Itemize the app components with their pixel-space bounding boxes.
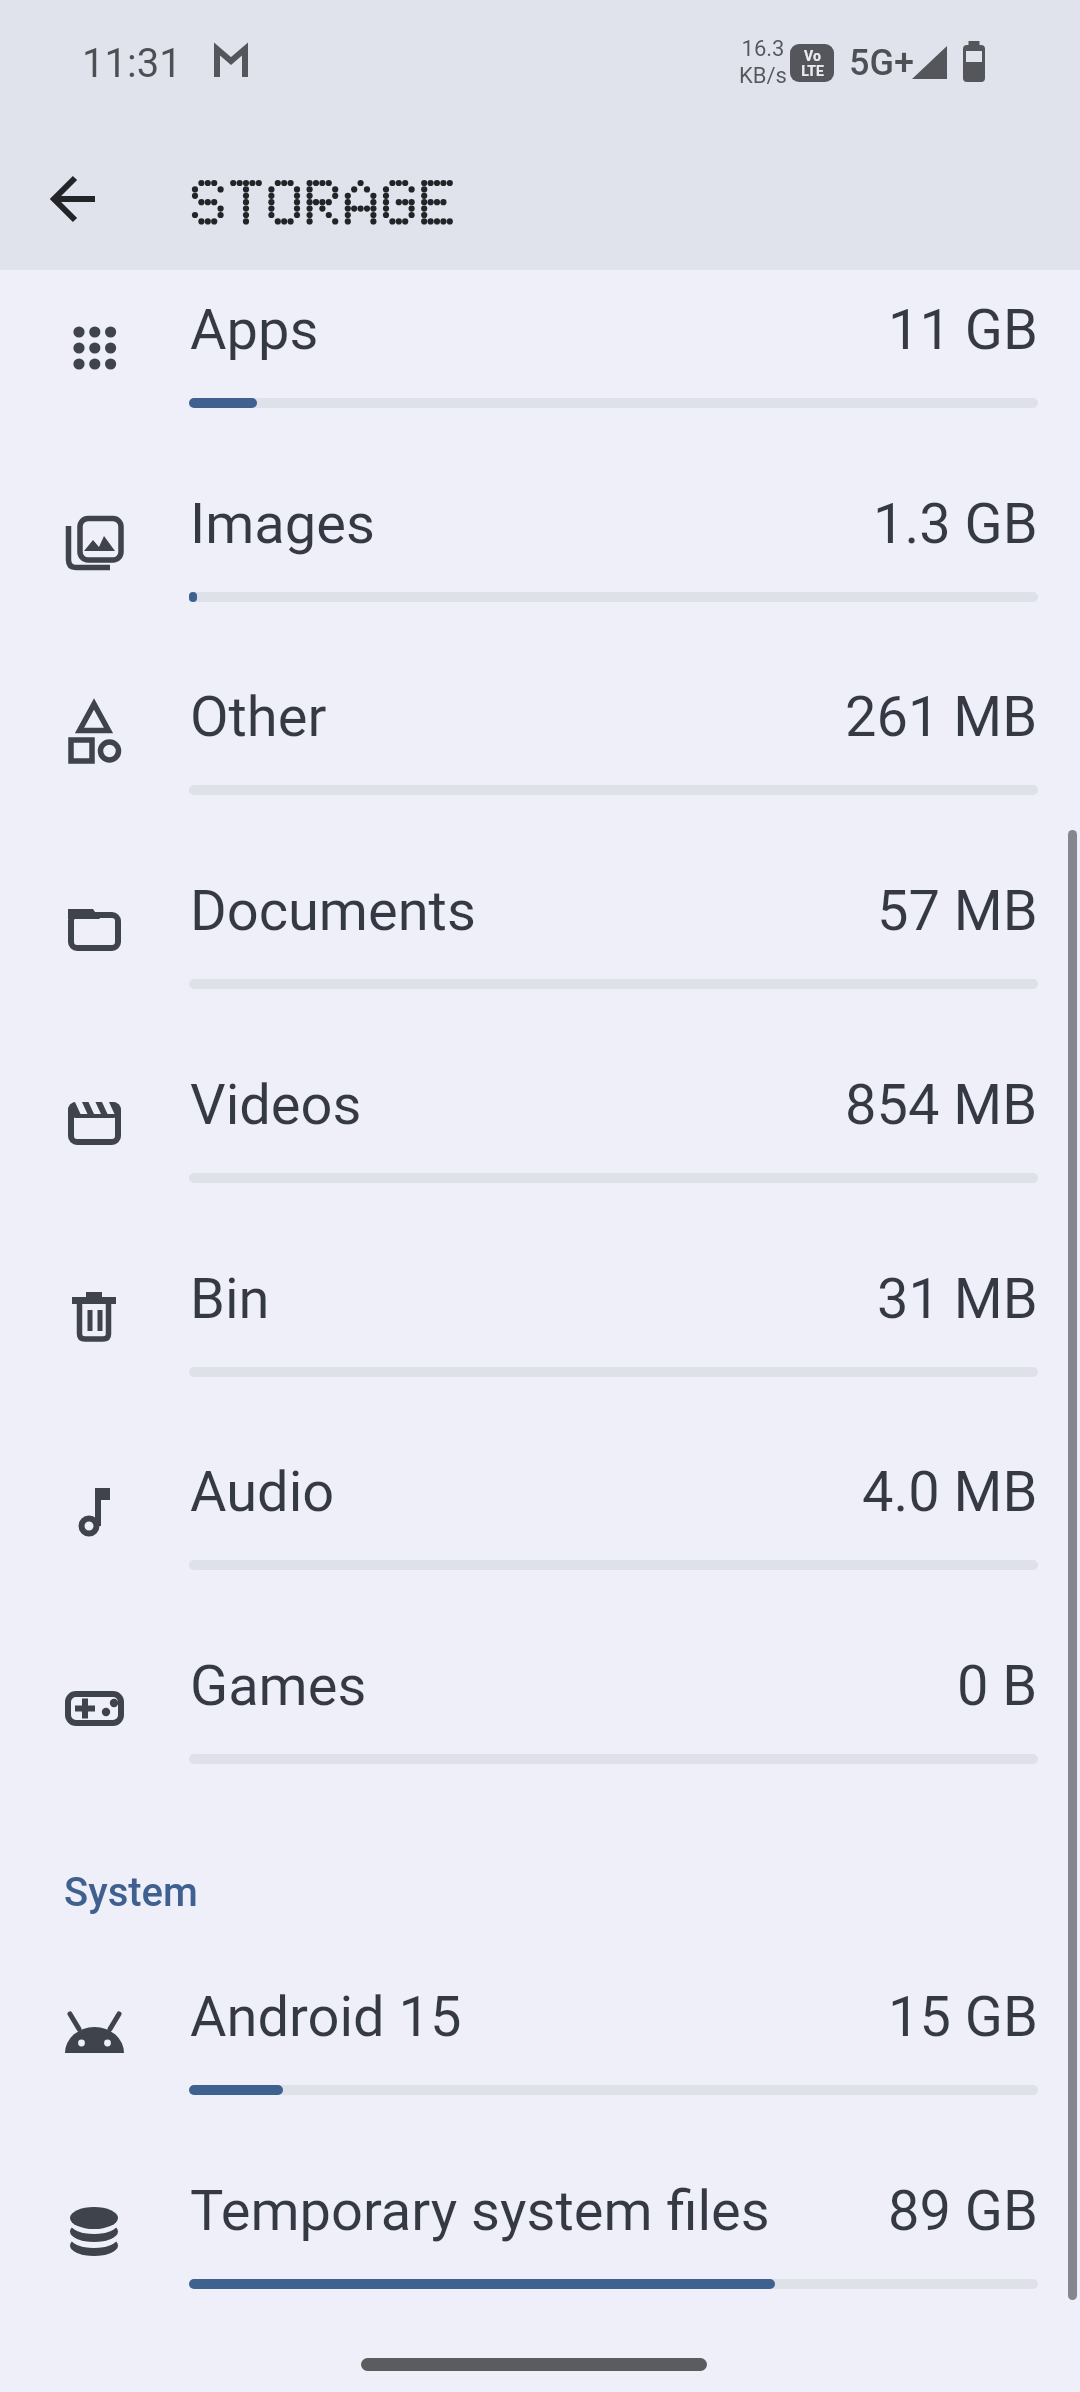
staticText: Videos xyxy=(190,1072,362,1138)
staticText: 89 GB xyxy=(888,2178,1038,2244)
staticText: Audio xyxy=(190,1459,335,1525)
staticText: 16.3 KB/s xyxy=(738,36,788,89)
button[interactable]: Apps xyxy=(0,270,1080,464)
staticText: System xyxy=(64,1869,198,1916)
staticText: 31 MB xyxy=(877,1266,1038,1332)
staticText: 11 GB xyxy=(888,297,1038,363)
staticText: Images xyxy=(190,491,375,557)
button[interactable]: Videos xyxy=(0,1045,1080,1239)
button[interactable]: Games xyxy=(0,1626,1080,1820)
staticText: 15 GB xyxy=(888,1984,1038,2050)
button[interactable]: Images xyxy=(0,464,1080,658)
staticText: Android 15 xyxy=(190,1984,462,2050)
staticText: Temporary system files xyxy=(190,2178,770,2244)
staticText: 5G+ xyxy=(849,42,915,84)
button[interactable]: Other xyxy=(0,657,1080,851)
staticText: 854 MB xyxy=(845,1072,1038,1138)
staticText: Bin xyxy=(190,1266,270,1332)
staticText: 0 B xyxy=(957,1653,1038,1719)
button[interactable]: Audio xyxy=(0,1432,1080,1626)
staticText: 1.3 GB xyxy=(873,491,1038,557)
button[interactable]: Bin xyxy=(0,1239,1080,1433)
staticText: Apps xyxy=(190,297,319,363)
button[interactable]: Temporary system files xyxy=(0,2151,1080,2345)
button[interactable]: Android 15 xyxy=(0,1957,1080,2151)
staticText: Documents xyxy=(190,878,476,944)
staticText: 4.0 MB xyxy=(862,1459,1038,1525)
staticText: 57 MB xyxy=(877,878,1038,944)
staticText: 261 MB xyxy=(845,684,1038,750)
button[interactable]: Documents xyxy=(0,851,1080,1045)
staticText: Other xyxy=(190,684,327,750)
staticText: Games xyxy=(190,1653,367,1719)
staticText: 11:31 xyxy=(82,40,182,87)
staticText: Vo LTE xyxy=(801,48,824,79)
